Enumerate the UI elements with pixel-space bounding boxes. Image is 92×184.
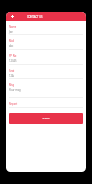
staticText: Seat [9,69,15,73]
staticText: CONTACT US [27,15,43,19]
staticText: Report [9,102,18,106]
button[interactable]: Add [6,12,18,21]
staticText: Msg [9,83,15,87]
staticText: abc [9,44,14,48]
staticText: Name [9,25,17,29]
button[interactable]: Seat [9,65,83,78]
button[interactable]: SUBMIT [9,113,83,124]
button[interactable]: Name [9,21,83,34]
staticText: 12345 [9,59,17,63]
staticText: Your msg [9,88,21,92]
staticText: Joe [9,30,13,34]
button[interactable]: Report [9,98,83,107]
staticText: PP No [9,54,17,58]
staticText: 12A [9,74,14,78]
button[interactable]: Mail [9,35,83,49]
button[interactable]: Msg [9,79,83,97]
button[interactable]: PP No [9,50,83,64]
staticText: Mail [9,39,15,43]
staticText: SUBMIT [42,117,50,120]
